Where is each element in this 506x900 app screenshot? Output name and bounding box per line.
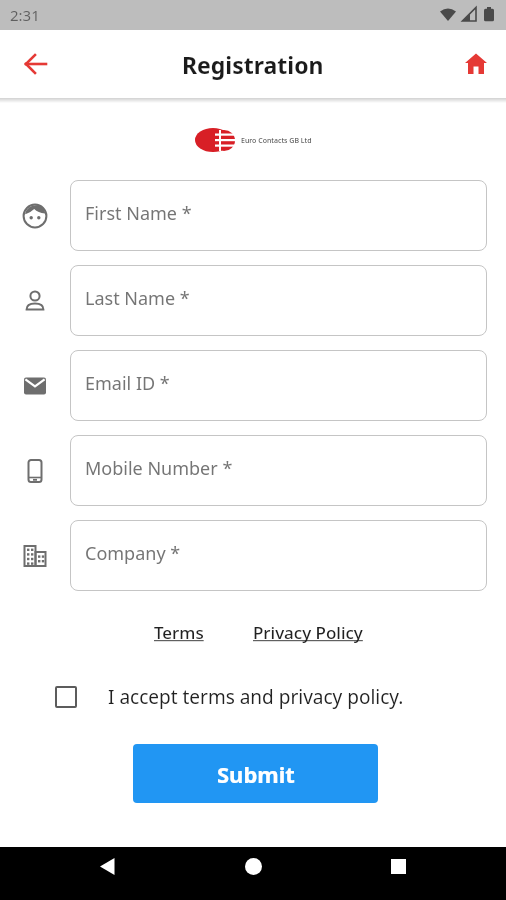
- button[interactable]: Privacy Policy: [253, 621, 363, 644]
- staticText: Submit: [217, 759, 295, 789]
- staticText: Last Name *: [85, 286, 190, 311]
- staticText: 2:31: [10, 5, 40, 25]
- button[interactable]: I accept terms and privacy policy.: [55, 684, 506, 710]
- button[interactable]: First Name *: [70, 180, 487, 251]
- staticText: I accept terms and privacy policy.: [108, 684, 404, 710]
- button[interactable]: Last Name *: [70, 265, 487, 336]
- button[interactable]: Submit: [133, 744, 378, 803]
- staticText: Email ID *: [85, 371, 170, 396]
- staticText: Registration: [182, 49, 324, 80]
- button[interactable]: [85, 847, 129, 886]
- button[interactable]: Company *: [70, 520, 487, 591]
- staticText: Mobile Number *: [85, 456, 233, 481]
- button[interactable]: Mobile Number *: [70, 435, 487, 506]
- button[interactable]: Terms: [154, 621, 204, 644]
- staticText: First Name *: [85, 201, 192, 226]
- button[interactable]: [231, 847, 275, 886]
- button[interactable]: [14, 42, 58, 86]
- button[interactable]: [376, 847, 420, 886]
- staticText: Euro Contacts GB Ltd: [241, 136, 312, 146]
- staticText: Company *: [85, 541, 181, 566]
- button[interactable]: [454, 42, 498, 86]
- button[interactable]: Email ID *: [70, 350, 487, 421]
